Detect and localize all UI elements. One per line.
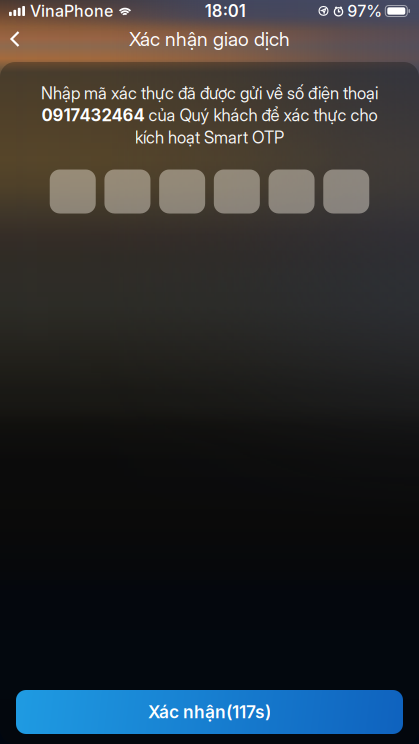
button[interactable]: OTP digit: [214, 169, 260, 213]
staticText: 18:01: [205, 1, 246, 21]
button[interactable]: OTP digit: [269, 169, 315, 213]
button[interactable]: OTP digit: [159, 169, 205, 213]
staticText: Nhập mã xác thực đã được gửi về số điện …: [41, 83, 378, 103]
staticText: 97%: [347, 1, 382, 21]
button[interactable]: OTP digit: [104, 169, 150, 213]
button[interactable]: OTP digit: [323, 169, 369, 213]
button[interactable]: OTP digit: [50, 169, 96, 213]
button[interactable]: Back: [0, 23, 40, 54]
staticText: của Quý khách để xác thực cho: [144, 105, 377, 125]
staticText: kích hoạt Smart OTP: [135, 127, 284, 147]
staticText: Xác nhận giao dịch: [129, 27, 290, 51]
button[interactable]: Xác nhận(117s): [16, 690, 403, 734]
staticText: VinaPhone: [30, 1, 113, 21]
staticText: Xác nhận(117s): [148, 701, 271, 722]
staticText: 0917432464: [41, 105, 144, 125]
